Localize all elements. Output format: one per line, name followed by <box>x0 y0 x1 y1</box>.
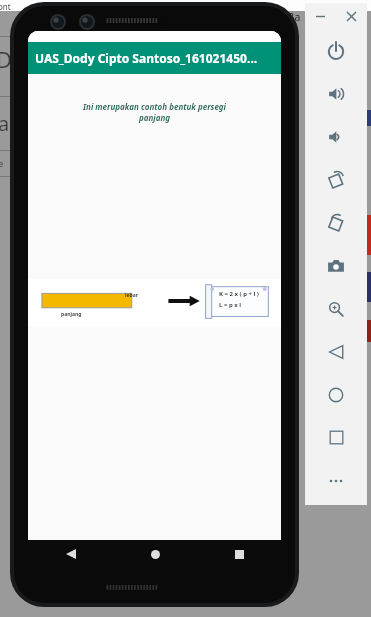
button[interactable]: Close <box>336 3 367 29</box>
staticText: a <box>0 110 10 137</box>
button[interactable]: Home <box>113 540 197 568</box>
button[interactable]: Minimise <box>305 3 336 29</box>
staticText: se <box>0 157 4 169</box>
button[interactable]: Zoom <box>305 287 367 330</box>
staticText: L = p x l <box>219 301 242 309</box>
button[interactable]: Power <box>305 29 367 72</box>
button[interactable]: UAS_Dody Cipto Santoso_161021450… <box>28 42 281 74</box>
staticText: Ini merupakan contoh bentuk persegi panj… <box>74 101 235 123</box>
button[interactable]: Home <box>305 373 367 416</box>
button[interactable]: Overview <box>305 416 367 459</box>
button[interactable]: Back <box>305 330 367 373</box>
button[interactable]: Back <box>28 540 113 568</box>
staticText: ont <box>0 1 11 12</box>
button[interactable]: More <box>305 459 367 502</box>
button[interactable]: Volume down <box>305 115 367 158</box>
staticText: Ba <box>287 9 301 24</box>
button[interactable]: Volume up <box>305 72 367 115</box>
button[interactable]: Rotate left <box>305 158 367 201</box>
staticText: lebar <box>125 292 138 299</box>
staticText: K = 2 x ( p + l ) <box>219 290 259 298</box>
staticText: D <box>0 44 13 74</box>
staticText: UAS_Dody Cipto Santoso_161021450… <box>35 50 258 66</box>
staticText: panjang <box>61 311 82 318</box>
button[interactable]: Take screenshot <box>305 244 367 287</box>
button[interactable]: Rotate right <box>305 201 367 244</box>
button[interactable]: Recent apps <box>197 540 281 568</box>
